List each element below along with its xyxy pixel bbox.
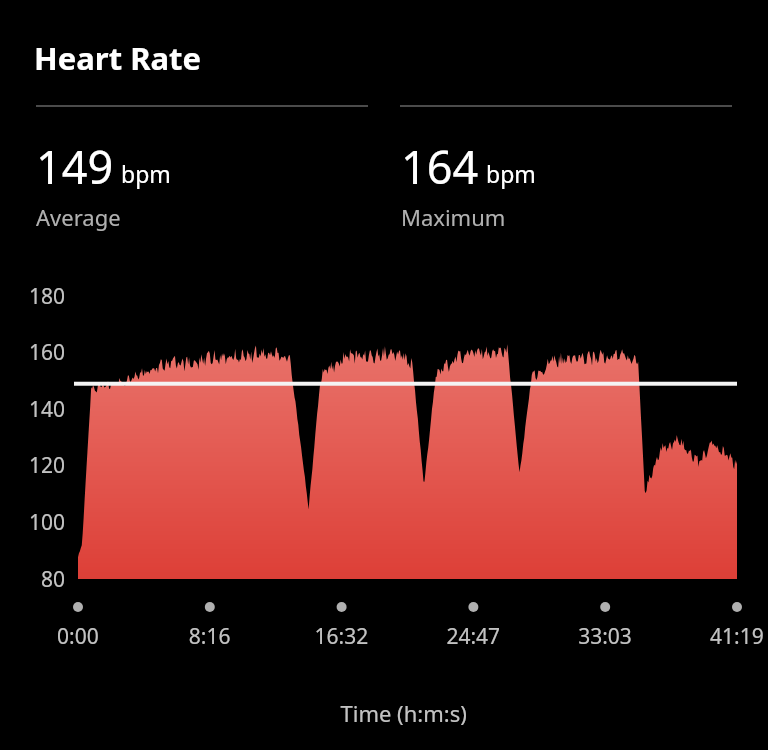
button[interactable]: Heart rate chart [0, 0, 768, 750]
